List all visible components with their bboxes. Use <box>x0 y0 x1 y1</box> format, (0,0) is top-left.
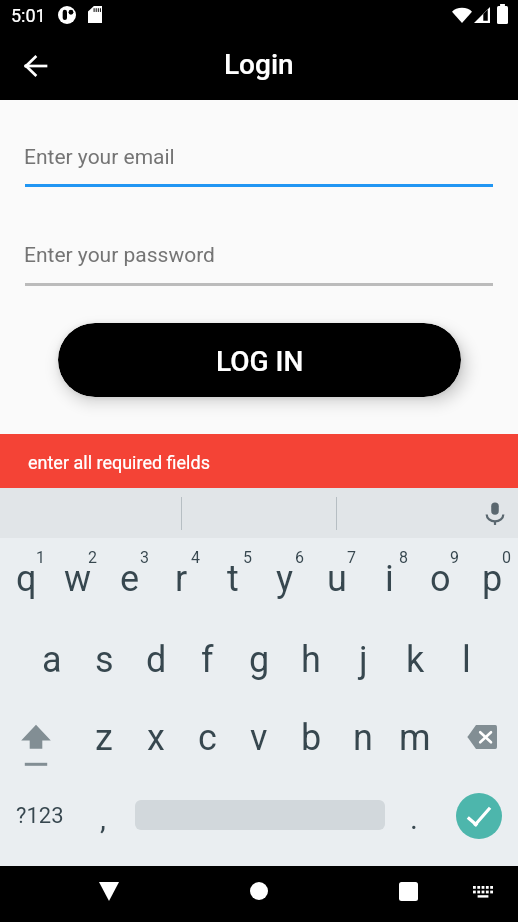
button[interactable]: 7 <box>311 538 363 616</box>
button[interactable]: h <box>285 620 337 698</box>
staticText: y <box>276 558 294 600</box>
button[interactable]: 5 <box>207 538 259 616</box>
staticText: w <box>64 558 92 600</box>
button[interactable]: 1 <box>0 538 52 616</box>
button[interactable]: . <box>390 776 438 854</box>
staticText: a <box>42 639 62 681</box>
button[interactable]: Recents <box>383 866 433 916</box>
staticText: . <box>410 801 418 836</box>
staticText: 2 <box>88 548 97 567</box>
staticText: z <box>95 717 113 759</box>
button[interactable]: n <box>337 698 389 776</box>
button[interactable]: c <box>181 698 233 776</box>
staticText: n <box>353 717 373 759</box>
staticText: s <box>95 639 114 681</box>
button[interactable]: Backspace <box>456 698 508 776</box>
button[interactable]: 2 <box>52 538 104 616</box>
staticText: 5 <box>243 548 252 567</box>
button[interactable]: v <box>233 698 285 776</box>
staticText: Enter your email <box>24 145 175 170</box>
staticText: 0 <box>502 548 511 567</box>
staticText: o <box>430 558 451 600</box>
button[interactable]: 0 <box>466 538 518 616</box>
staticText: x <box>147 717 165 759</box>
button[interactable]: 8 <box>363 538 415 616</box>
button[interactable]: enter all required fields <box>0 434 518 488</box>
staticText: d <box>146 639 167 681</box>
staticText: l <box>462 639 471 681</box>
button[interactable]: m <box>389 698 441 776</box>
staticText: 1 <box>36 548 45 567</box>
staticText: j <box>359 639 368 681</box>
button[interactable]: x <box>130 698 182 776</box>
button[interactable]: Back <box>13 44 57 88</box>
staticText: 5:01 <box>11 5 46 26</box>
staticText: LOG IN <box>216 345 304 378</box>
button[interactable]: 4 <box>155 538 207 616</box>
staticText: v <box>250 717 268 759</box>
staticText: g <box>249 639 270 681</box>
button[interactable]: g <box>233 620 285 698</box>
button[interactable]: s <box>78 620 130 698</box>
staticText: 7 <box>347 548 356 567</box>
button[interactable]: Enter your email <box>0 100 518 225</box>
button[interactable]: Back <box>84 866 134 916</box>
staticText: c <box>198 717 217 759</box>
staticText: Login <box>224 48 294 81</box>
staticText: k <box>406 639 425 681</box>
staticText: t <box>227 558 239 600</box>
staticText: 4 <box>191 548 200 567</box>
staticText: f <box>201 639 214 681</box>
button[interactable]: k <box>389 620 441 698</box>
staticText: m <box>399 717 431 759</box>
button[interactable]: Shift <box>10 698 62 776</box>
button[interactable]: Enter <box>456 793 502 839</box>
staticText: b <box>301 717 322 759</box>
button[interactable]: Home <box>234 866 284 916</box>
button[interactable]: , <box>78 776 128 854</box>
staticText: e <box>120 558 140 600</box>
staticText: h <box>301 639 321 681</box>
button[interactable]: 6 <box>259 538 311 616</box>
staticText: Enter your password <box>24 243 215 268</box>
button[interactable]: f <box>181 620 233 698</box>
button[interactable]: LOG IN <box>58 323 461 397</box>
button[interactable]: ?123 <box>9 776 71 854</box>
staticText: 9 <box>450 548 459 567</box>
button[interactable]: j <box>337 620 389 698</box>
staticText: enter all required fields <box>28 452 210 473</box>
button[interactable]: Enter your password <box>0 225 518 295</box>
staticText: ?123 <box>16 803 64 829</box>
staticText: u <box>327 558 347 600</box>
staticText: q <box>16 558 37 600</box>
button[interactable]: l <box>440 620 492 698</box>
staticText: r <box>175 558 188 600</box>
staticText: p <box>482 558 503 600</box>
staticText: 8 <box>399 548 408 567</box>
staticText: i <box>385 558 394 600</box>
button[interactable]: Voice input <box>475 493 515 533</box>
button[interactable]: 3 <box>104 538 156 616</box>
button[interactable]: Switch keyboard <box>458 867 508 917</box>
staticText: , <box>100 801 106 836</box>
staticText: 6 <box>295 548 304 567</box>
button[interactable]: d <box>130 620 182 698</box>
button[interactable]: a <box>26 620 78 698</box>
button[interactable]: b <box>285 698 337 776</box>
staticText: 3 <box>140 548 149 567</box>
button[interactable]: 9 <box>414 538 466 616</box>
button[interactable]: z <box>78 698 130 776</box>
